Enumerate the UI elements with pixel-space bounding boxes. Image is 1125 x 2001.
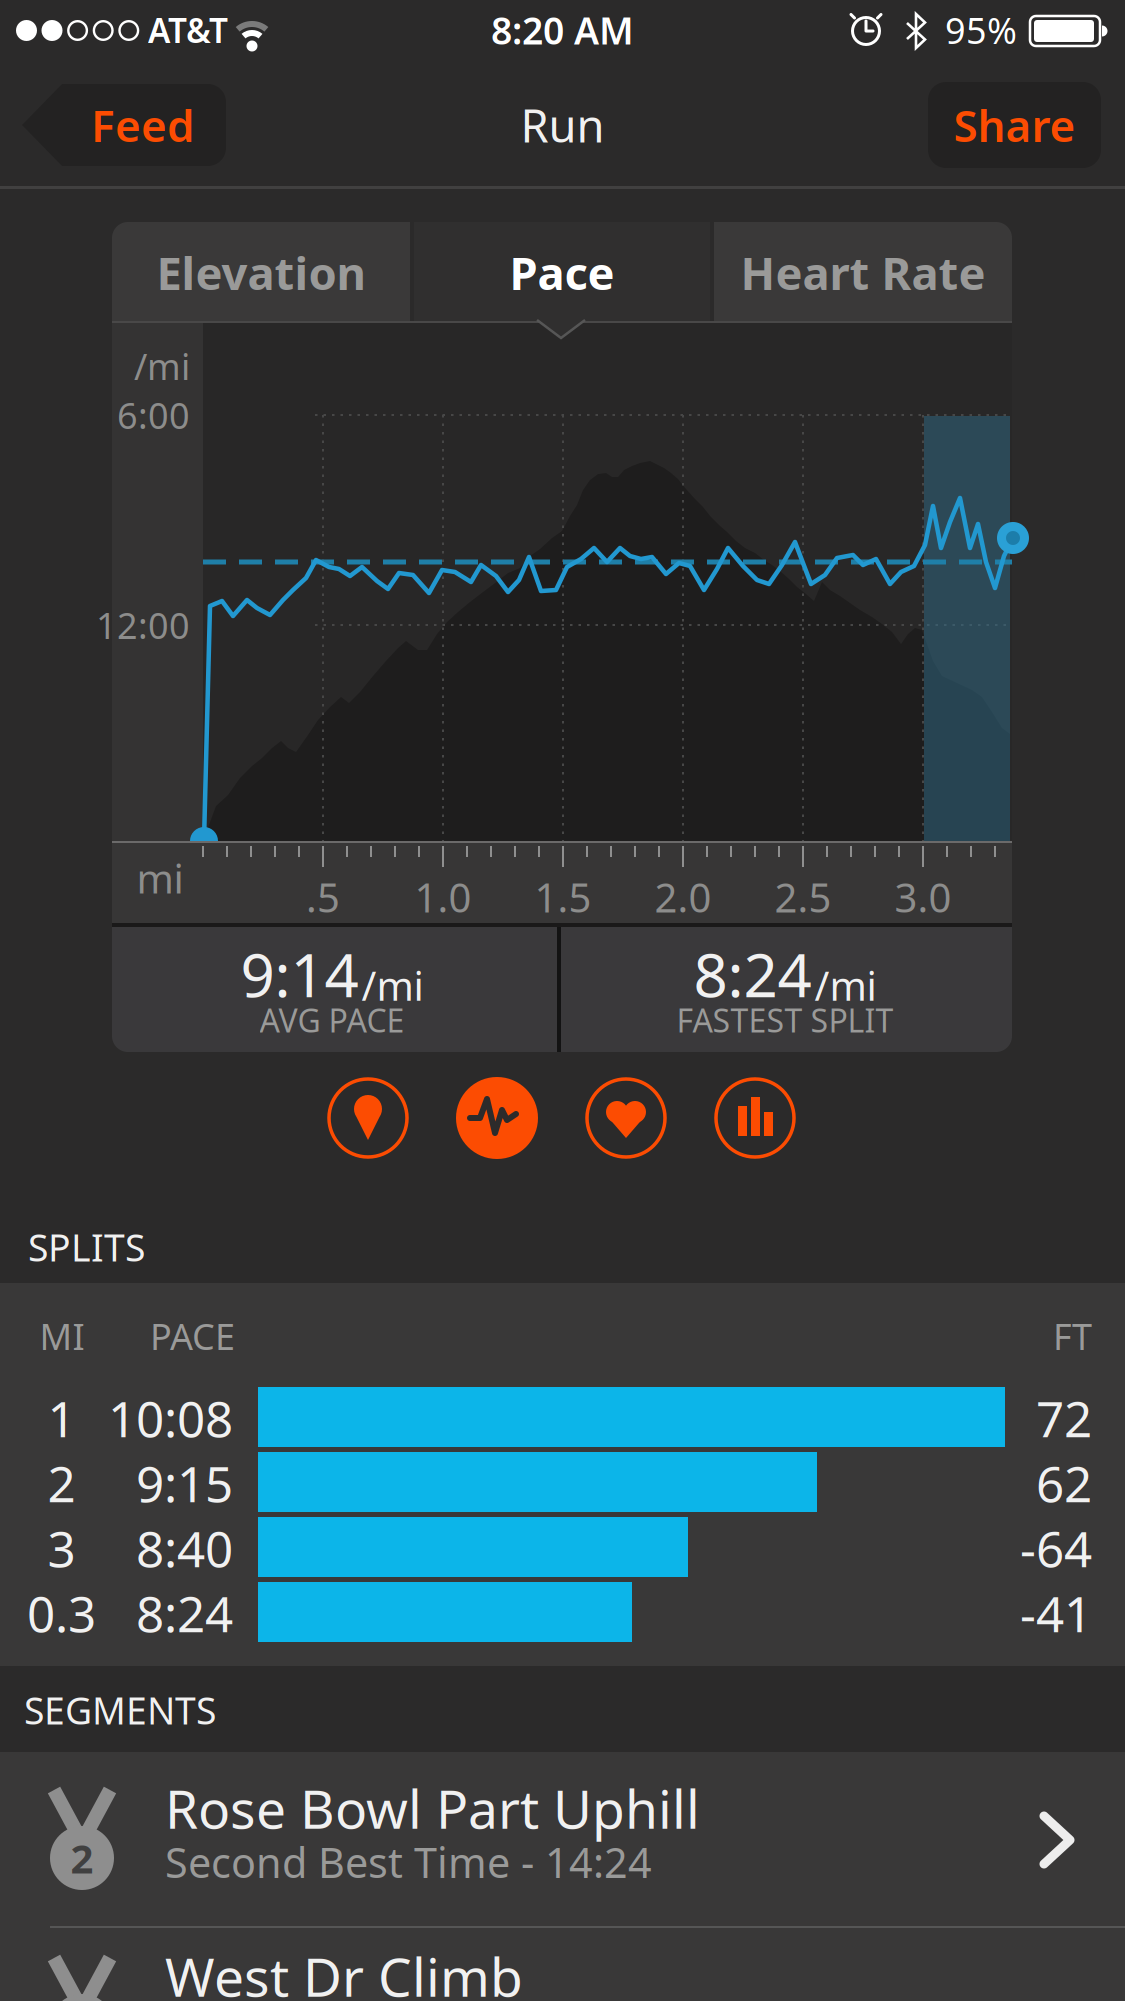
button[interactable]: Map	[329, 1079, 407, 1157]
staticText: Share	[953, 96, 1075, 154]
button[interactable]: Feed	[22, 82, 226, 168]
staticText: 2	[47, 1450, 75, 1516]
staticText: 8:24	[136, 1580, 233, 1646]
staticText: FT	[1053, 1312, 1092, 1360]
button[interactable]: 2	[0, 1928, 1125, 2001]
staticText: Run	[520, 95, 604, 155]
staticText: 1	[47, 1385, 75, 1451]
staticText: SPLITS	[28, 1222, 145, 1272]
staticText: 2.0	[654, 870, 711, 923]
staticText: 8:24	[693, 934, 811, 1014]
staticText: /mi	[814, 959, 876, 1012]
staticText: 10:08	[108, 1385, 233, 1451]
button[interactable]: Pace	[456, 1077, 538, 1159]
staticText: 8:20 AM	[491, 5, 634, 55]
staticText: 1.5	[534, 870, 591, 923]
staticText: AT&T	[148, 8, 228, 52]
staticText: 3.0	[894, 870, 951, 923]
staticText: 3	[47, 1515, 75, 1581]
staticText: 0.3	[27, 1580, 96, 1646]
staticText: AVG PACE	[259, 999, 404, 1041]
staticText: Second Best Time - 14:24	[165, 1835, 652, 1889]
staticText: 9:14	[240, 934, 358, 1014]
staticText: Heart Rate	[740, 242, 985, 303]
button[interactable]: Elevation	[112, 222, 410, 323]
staticText: mi	[136, 851, 183, 904]
button[interactable]: Heart Rate	[587, 1079, 665, 1157]
button[interactable]: Splits	[716, 1079, 794, 1157]
staticText: -41	[1020, 1580, 1092, 1646]
staticText: 2.5	[774, 870, 831, 923]
staticText: 8:40	[136, 1515, 233, 1581]
staticText: SEGMENTS	[24, 1685, 216, 1735]
staticText: 95%	[945, 6, 1017, 54]
staticText: /mi	[134, 342, 190, 390]
staticText: Rose Bowl Part Uphill	[165, 1773, 700, 1843]
button[interactable]: 2	[0, 1752, 1125, 1926]
button[interactable]: Share	[928, 82, 1101, 168]
staticText: FASTEST SPLIT	[676, 999, 893, 1041]
staticText: 12:00	[96, 601, 190, 649]
staticText: MI	[39, 1312, 84, 1360]
staticText: Feed	[91, 96, 195, 154]
staticText: 9:15	[136, 1450, 233, 1516]
button[interactable]: Heart Rate	[714, 222, 1012, 323]
staticText: .5	[306, 870, 340, 923]
staticText: Pace	[509, 242, 614, 303]
staticText: West Dr Climb	[165, 1941, 523, 2001]
staticText: 6:00	[117, 391, 190, 439]
button[interactable]: Pace	[414, 222, 710, 323]
staticText: 1.0	[414, 870, 471, 923]
staticText: 72	[1036, 1385, 1092, 1451]
staticText: 2	[70, 1831, 93, 1884]
staticText: PACE	[150, 1312, 235, 1360]
staticText: -64	[1020, 1515, 1092, 1581]
staticText: 62	[1036, 1450, 1092, 1516]
staticText: /mi	[361, 959, 423, 1012]
staticText: Elevation	[156, 242, 365, 303]
